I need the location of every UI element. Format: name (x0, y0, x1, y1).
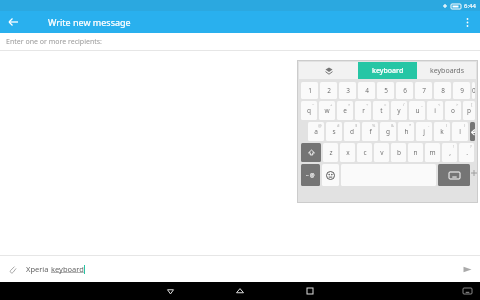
button[interactable]: 2 (320, 82, 337, 99)
staticText: 9 (460, 86, 464, 95)
staticText: 0 (472, 86, 475, 95)
button[interactable]: p (463, 101, 475, 120)
staticText: ·· @ (306, 172, 315, 179)
staticText: ) (464, 123, 466, 128)
staticText: k (440, 127, 444, 136)
button[interactable]: n (408, 143, 423, 162)
button[interactable]: Send (459, 261, 475, 277)
button[interactable]: t (373, 101, 389, 120)
staticText: c (363, 148, 367, 157)
staticText: g (386, 127, 390, 136)
staticText: z (329, 148, 333, 157)
button[interactable]: Back (162, 283, 178, 299)
staticText: r (362, 106, 365, 115)
button[interactable]: e (337, 101, 353, 120)
staticText: i (434, 106, 436, 115)
staticText: p (467, 106, 471, 115)
staticText: x (346, 148, 350, 157)
staticText: ÷ (366, 102, 369, 107)
button[interactable]: 9 (453, 82, 470, 99)
button[interactable]: z (323, 143, 338, 162)
button[interactable]: m (425, 143, 440, 162)
button[interactable]: Home (232, 283, 248, 299)
staticText: v (380, 148, 384, 157)
button[interactable]: 0 (472, 82, 475, 99)
button[interactable]: j (416, 122, 432, 141)
button[interactable]: Enter one or more recipients: (0, 33, 480, 50)
staticText: 8 (441, 86, 445, 95)
button[interactable]: keyboard (358, 62, 417, 79)
button[interactable]: key (301, 164, 320, 186)
staticText: d (350, 127, 354, 136)
button[interactable]: key (438, 164, 470, 186)
staticText: 1 (308, 86, 312, 95)
button[interactable]: More options (458, 13, 476, 31)
button[interactable]: 6 (396, 82, 413, 99)
button[interactable]: b (391, 143, 406, 162)
button[interactable]: r (355, 101, 371, 120)
staticText: / (403, 102, 405, 107)
staticText: q (307, 106, 311, 115)
staticText: j (423, 127, 425, 136)
button[interactable]: f (362, 122, 378, 141)
button[interactable]: Back (4, 13, 22, 31)
staticText: % (372, 123, 376, 128)
staticText: 6:44 (464, 2, 476, 10)
staticText: < (438, 102, 441, 107)
button[interactable]: key (470, 122, 475, 141)
button[interactable]: w (319, 101, 335, 120)
button[interactable]: y (391, 101, 407, 120)
staticText: e (343, 106, 347, 115)
button[interactable]: h (398, 122, 414, 141)
staticText: * (409, 123, 412, 128)
button[interactable]: c (357, 143, 372, 162)
button[interactable]: . (459, 143, 474, 162)
staticText: + (330, 102, 333, 107)
button[interactable]: 5 (377, 82, 394, 99)
staticText: l (459, 127, 461, 136)
staticText: n (413, 148, 418, 157)
button[interactable]: 4 (358, 82, 375, 99)
staticText: = (384, 102, 387, 107)
staticText: # (337, 123, 340, 128)
button[interactable]: v (374, 143, 389, 162)
staticText: Write new message (48, 16, 131, 28)
button[interactable]: keyboards (417, 62, 476, 79)
button[interactable]: u (409, 101, 425, 120)
button[interactable]: x (340, 143, 355, 162)
button[interactable]: k (434, 122, 450, 141)
staticText: - (428, 123, 430, 128)
staticText: & (391, 123, 394, 128)
staticText: keyboards (430, 66, 464, 76)
staticText: keyboard (372, 66, 404, 76)
button[interactable]: q (301, 101, 317, 120)
button[interactable]: i (427, 101, 443, 120)
staticText: t (380, 106, 383, 115)
button[interactable]: , (442, 143, 457, 162)
button[interactable]: 8 (434, 82, 451, 99)
button[interactable]: 1 (301, 82, 318, 99)
button[interactable]: key (301, 143, 321, 162)
button[interactable]: o (445, 101, 461, 120)
button[interactable]: d (344, 122, 360, 141)
button[interactable]: key (322, 164, 339, 186)
staticText: h (404, 127, 409, 136)
staticText: b (397, 148, 401, 157)
staticText: m (429, 148, 436, 157)
button[interactable]: 3 (339, 82, 356, 99)
staticText: ( (446, 123, 448, 128)
button[interactable]: 7 (415, 82, 432, 99)
staticText: [ (471, 102, 473, 107)
button[interactable]: Attach (4, 261, 20, 277)
button[interactable]: l (452, 122, 468, 141)
button[interactable]: g (380, 122, 396, 141)
button[interactable]: a (308, 122, 324, 141)
staticText: ~ (312, 102, 315, 107)
staticText: 2 (327, 86, 331, 95)
button[interactable]: Recents (302, 283, 318, 299)
button[interactable]: Switch keyboard (460, 284, 474, 298)
staticText: 6 (403, 86, 407, 95)
button[interactable]: Keyboard layouts (299, 62, 358, 79)
button[interactable]: s (326, 122, 342, 141)
